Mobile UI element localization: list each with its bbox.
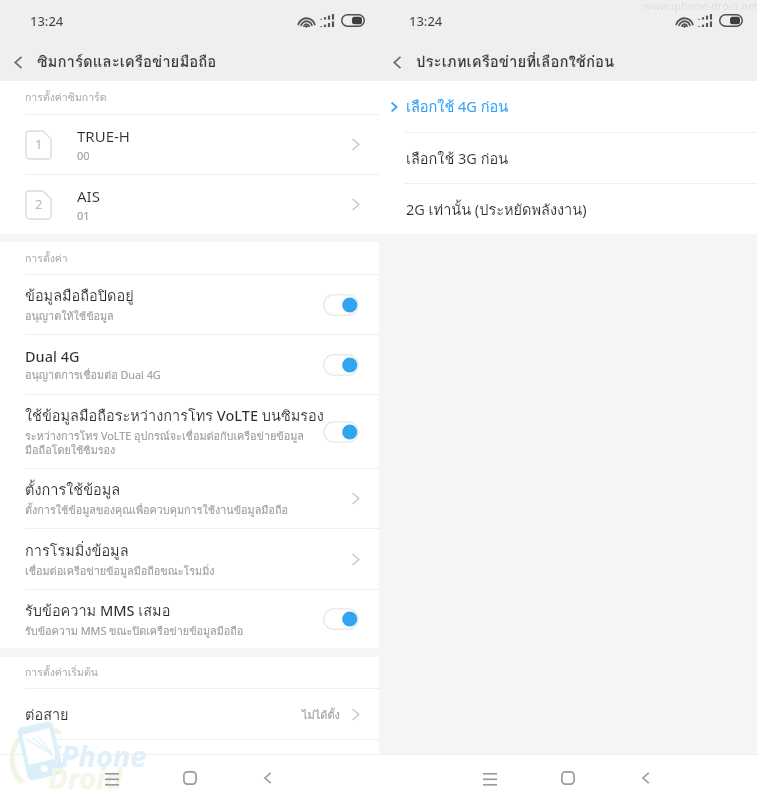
staticText: การโรมมิ่งข้อมูล	[25, 539, 129, 562]
staticText: เลือกใช้ 3G ก่อน	[406, 147, 509, 170]
staticText: 13:24	[30, 12, 64, 30]
button[interactable]: เลือกใช้ 4G ก่อน	[379, 81, 757, 132]
staticText: Dual 4G	[25, 346, 80, 366]
button[interactable]: ตั้งการใช้ข้อมูล	[0, 469, 379, 528]
staticText: 2G เท่านั้น (ประหยัดพลังงาน)	[406, 198, 587, 221]
staticText: ประเภทเครือข่ายที่เลือกใช้ก่อน	[416, 50, 615, 74]
staticText: 13:24	[409, 12, 443, 30]
staticText: Droid	[48, 758, 123, 797]
staticText: การตั้งค่าซิมการ์ด	[25, 89, 107, 106]
button[interactable]: 1	[0, 115, 379, 174]
button[interactable]: Back	[624, 756, 668, 800]
button[interactable]: Dual 4G	[0, 335, 379, 394]
staticText: AIS	[77, 186, 100, 206]
staticText: เลือกใช้ 4G ก่อน	[406, 95, 509, 118]
staticText: ระหว่างการโทร VoLTE อุปกรณ์จะเชื่อมต่อกั…	[25, 428, 308, 459]
button[interactable]: Back	[246, 756, 290, 800]
staticText: รับข้อความ MMS เสมอ	[25, 599, 171, 622]
staticText: ไม่ได้ตั้ง	[302, 706, 340, 723]
staticText: การตั้งค่า	[25, 250, 68, 267]
staticText: 1	[35, 135, 43, 153]
staticText: TRUE-H	[77, 126, 130, 146]
button[interactable]: Toggle	[323, 294, 359, 316]
button[interactable]: Recent apps	[468, 756, 512, 800]
staticText: ซิมการ์ดและเครือข่ายมือถือ	[37, 50, 217, 74]
button[interactable]: รับข้อความ MMS เสมอ	[0, 590, 379, 648]
button[interactable]: Home	[168, 756, 212, 800]
staticText: เชื่อมต่อเครือข่ายข้อมูลมือถือขณะโรมมิ่ง	[25, 563, 215, 580]
button[interactable]: ใช้ข้อมูลมือถือระหว่างการโทร VoLTE บนซิม…	[0, 395, 379, 468]
staticText: อนุญาตให้ใช้ข้อมูล	[25, 308, 275, 325]
button[interactable]: Toggle	[323, 354, 359, 376]
button[interactable]: ข้อมูลมือถือปิดอยู่	[0, 275, 379, 334]
staticText: ตั้งการใช้ข้อมูล	[25, 478, 121, 501]
button[interactable]: การโรมมิ่งข้อมูล	[0, 529, 379, 589]
staticText: iPhone	[52, 736, 147, 775]
staticText: www.iphone-droid.net	[643, 0, 757, 13]
button[interactable]: Toggle	[323, 608, 359, 630]
button[interactable]: ต่อสาย	[0, 689, 379, 739]
button[interactable]: 2G เท่านั้น (ประหยัดพลังงาน)	[379, 184, 757, 234]
staticText: ข้อมูลมือถือปิดอยู่	[25, 284, 134, 307]
staticText: 01	[77, 208, 90, 223]
staticText: ตั้งการใช้ข้อมูลของคุณเพื่อควบคุมการใช้ง…	[25, 502, 288, 519]
staticText: 2	[35, 195, 43, 213]
staticText: รับข้อความ MMS ขณะปิดเครือข่ายข้อมูลมือถ…	[25, 623, 275, 640]
staticText: ต่อสาย	[25, 703, 302, 726]
button[interactable]: เลือกใช้ 3G ก่อน	[379, 133, 757, 183]
staticText: 00	[77, 148, 90, 163]
button[interactable]: Back	[0, 44, 37, 81]
button[interactable]: Back	[379, 44, 416, 81]
staticText: การตั้งค่าเริ่มต้น	[25, 664, 98, 681]
button[interactable]: Toggle	[323, 421, 359, 443]
staticText: อนุญาตการเชื่อมต่อ Dual 4G	[25, 367, 275, 384]
button[interactable]: Home	[546, 756, 590, 800]
staticText: ใช้ข้อมูลมือถือระหว่างการโทร VoLTE บนซิม…	[25, 404, 324, 427]
button[interactable]: Recent apps	[90, 756, 134, 800]
button[interactable]: 2	[0, 175, 379, 234]
